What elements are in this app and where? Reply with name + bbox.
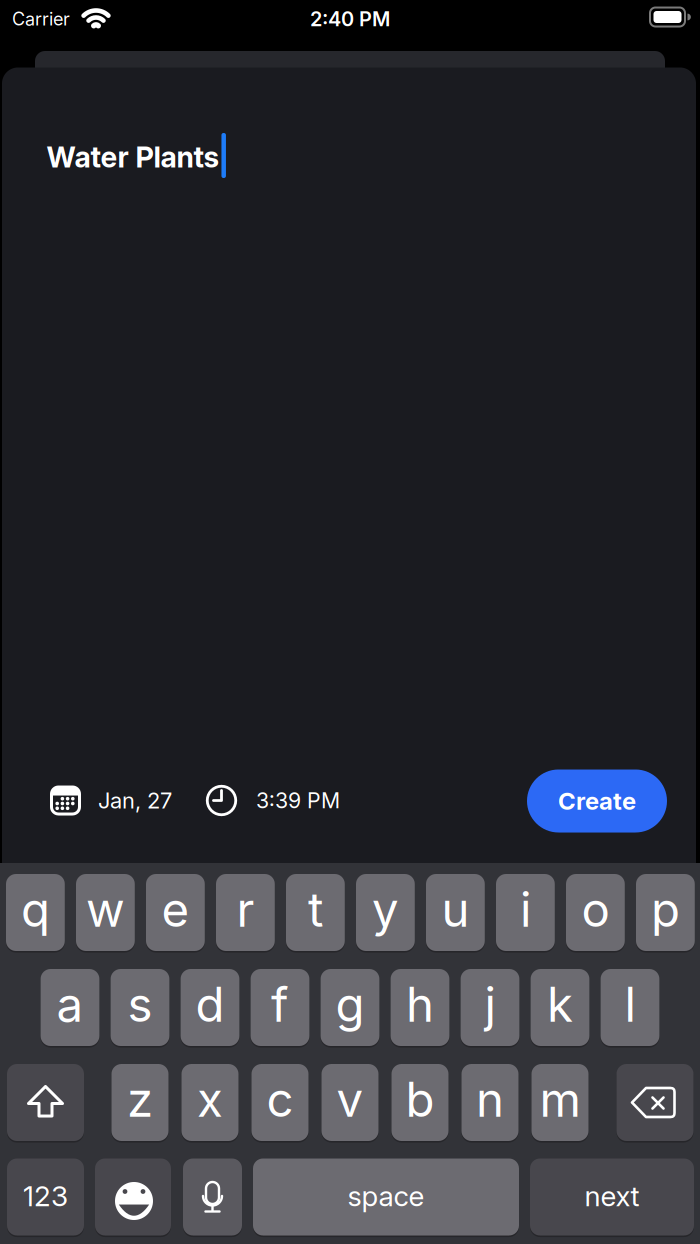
staticText: o	[581, 881, 609, 938]
button[interactable]: a	[41, 969, 99, 1046]
button[interactable]: 3:39 PM	[206, 785, 341, 816]
staticText: m	[539, 1071, 580, 1128]
button[interactable]: Create	[527, 769, 667, 832]
button[interactable]: y	[356, 874, 415, 951]
staticText: u	[441, 881, 469, 938]
button[interactable]: Jan, 27	[50, 785, 178, 815]
staticText: Jan, 27	[98, 787, 172, 814]
button[interactable]: f	[251, 969, 309, 1046]
button[interactable]: i	[496, 874, 555, 951]
staticText: b	[405, 1071, 434, 1128]
button[interactable]: l	[601, 969, 659, 1046]
staticText: s	[127, 976, 152, 1033]
button[interactable]: c	[251, 1064, 308, 1141]
staticText: x	[197, 1071, 223, 1128]
button[interactable]: e	[146, 874, 205, 951]
button[interactable]: x	[181, 1064, 238, 1141]
button[interactable]: Dictate	[183, 1158, 242, 1235]
button[interactable]: Shift	[7, 1064, 84, 1141]
button[interactable]: m	[531, 1064, 588, 1141]
button[interactable]: v	[321, 1064, 378, 1141]
button[interactable]: 123	[7, 1158, 84, 1235]
button[interactable]: d	[181, 969, 239, 1046]
staticText: i	[520, 881, 531, 938]
button[interactable]: next	[530, 1158, 694, 1235]
staticText: l	[624, 976, 635, 1033]
staticText: k	[547, 976, 573, 1033]
button[interactable]: u	[426, 874, 485, 951]
button[interactable]: Task name	[46, 140, 446, 174]
staticText: g	[335, 976, 364, 1033]
staticText: 2:40 PM	[310, 7, 390, 31]
button[interactable]: j	[461, 969, 519, 1046]
staticText: space	[347, 1179, 424, 1213]
staticText: q	[21, 881, 50, 938]
staticText: f	[271, 976, 289, 1033]
button[interactable]: p	[636, 874, 695, 951]
button[interactable]: Emoji	[95, 1158, 171, 1235]
button[interactable]: w	[76, 874, 135, 951]
staticText: Water Plants	[46, 140, 219, 174]
button[interactable]: t	[286, 874, 345, 951]
staticText: p	[651, 881, 680, 938]
button[interactable]: h	[391, 969, 449, 1046]
staticText: Create	[558, 786, 636, 815]
button[interactable]: k	[531, 969, 589, 1046]
staticText: y	[372, 881, 399, 938]
staticText: e	[161, 881, 189, 938]
staticText: r	[236, 881, 254, 938]
staticText: h	[406, 976, 434, 1033]
button[interactable]: n	[461, 1064, 518, 1141]
staticText: next	[584, 1179, 639, 1213]
button[interactable]: space	[253, 1158, 519, 1235]
button[interactable]: g	[321, 969, 379, 1046]
staticText: j	[484, 976, 495, 1033]
button[interactable]: o	[566, 874, 625, 951]
button[interactable]: q	[6, 874, 65, 951]
staticText: n	[476, 1071, 504, 1128]
staticText: a	[56, 976, 83, 1033]
button[interactable]: z	[111, 1064, 168, 1141]
staticText: z	[127, 1071, 153, 1128]
button[interactable]: b	[391, 1064, 448, 1141]
staticText: Carrier	[12, 8, 70, 30]
staticText: v	[336, 1071, 363, 1128]
button[interactable]: Delete	[616, 1064, 693, 1141]
staticText: w	[86, 881, 125, 938]
staticText: t	[308, 881, 323, 938]
staticText: d	[195, 976, 224, 1033]
button[interactable]: r	[216, 874, 275, 951]
staticText: c	[266, 1071, 293, 1128]
staticText: 3:39 PM	[256, 788, 340, 813]
staticText: 123	[23, 1179, 68, 1213]
button[interactable]: s	[111, 969, 169, 1046]
